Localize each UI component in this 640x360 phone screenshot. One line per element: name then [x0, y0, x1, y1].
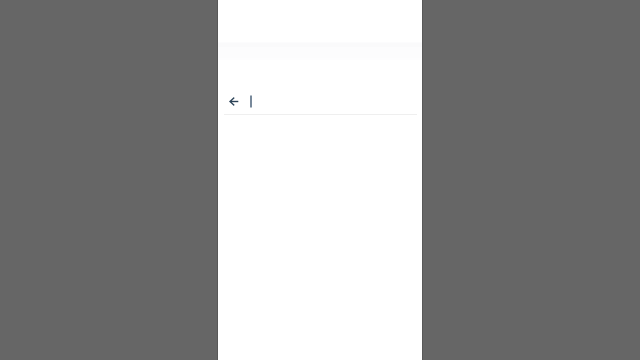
button[interactable]: Search: [243, 88, 422, 114]
button[interactable]: Back: [225, 92, 243, 110]
